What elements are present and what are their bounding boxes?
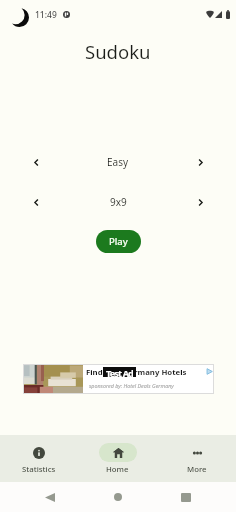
staticText: Statistics	[22, 464, 56, 475]
button[interactable]: Previous	[0, 192, 72, 212]
button[interactable]: More	[157, 435, 236, 482]
button[interactable]: Find Best Germany Hotels	[23, 364, 214, 394]
button[interactable]: Recent apps	[173, 482, 199, 512]
staticText: More	[187, 464, 207, 475]
staticText: Test Ad	[106, 367, 133, 377]
staticText: Home	[106, 464, 129, 475]
staticText: Find Best Germany Hotels	[86, 367, 187, 378]
button[interactable]: Back	[37, 482, 63, 512]
staticText: Easy	[107, 155, 129, 169]
button[interactable]: Statistics	[0, 435, 78, 482]
button[interactable]: Play	[96, 230, 141, 253]
button[interactable]: Previous	[0, 152, 72, 172]
staticText: Sudoku	[85, 39, 151, 64]
button[interactable]: Next	[164, 192, 236, 212]
button[interactable]: Next	[164, 152, 236, 172]
staticText: sponsored by: Hotel Deals Germany	[89, 382, 174, 389]
button[interactable]: Home	[78, 435, 157, 482]
staticText: 11:49	[35, 9, 57, 21]
button[interactable]: Home	[105, 482, 131, 512]
staticText: Play	[109, 235, 128, 248]
staticText: 9x9	[110, 195, 127, 209]
